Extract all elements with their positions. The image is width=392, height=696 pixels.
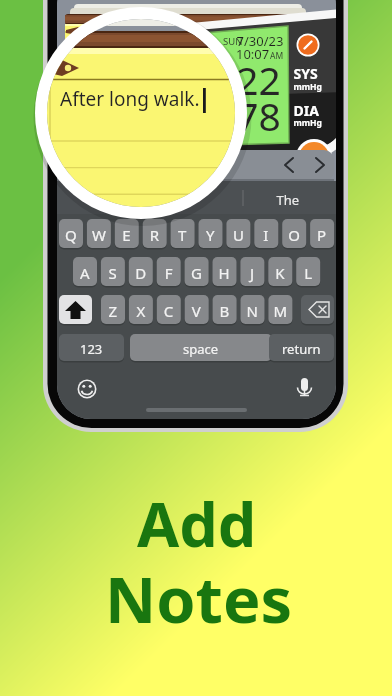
button[interactable]: Shift bbox=[59, 295, 92, 324]
button[interactable]: Edit reading bbox=[303, 41, 329, 67]
button[interactable]: Emoji bbox=[77, 379, 97, 399]
button[interactable]: numbers bbox=[59, 334, 124, 361]
button[interactable]: space bbox=[130, 334, 272, 361]
button[interactable]: Dictation bbox=[295, 377, 315, 399]
button[interactable]: return bbox=[269, 334, 334, 361]
button[interactable]: Backspace bbox=[301, 295, 334, 324]
